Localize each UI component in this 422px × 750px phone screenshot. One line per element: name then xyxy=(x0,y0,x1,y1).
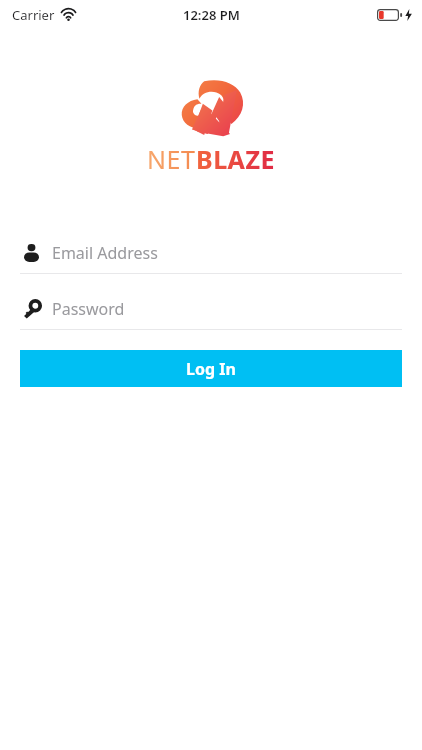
button[interactable]: Email address xyxy=(20,236,402,274)
staticText: NET xyxy=(147,142,196,176)
button[interactable]: Password xyxy=(20,292,402,330)
button[interactable]: Log In xyxy=(20,350,402,387)
staticText: BLAZE xyxy=(196,142,275,176)
staticText: Password xyxy=(52,298,125,320)
other: Email address xyxy=(20,242,42,264)
staticText: Carrier xyxy=(12,6,55,24)
staticText: Log In xyxy=(186,358,236,380)
staticText: Email Address xyxy=(52,242,158,264)
other: Password xyxy=(20,298,42,320)
staticText: 12:28 PM xyxy=(183,6,240,24)
